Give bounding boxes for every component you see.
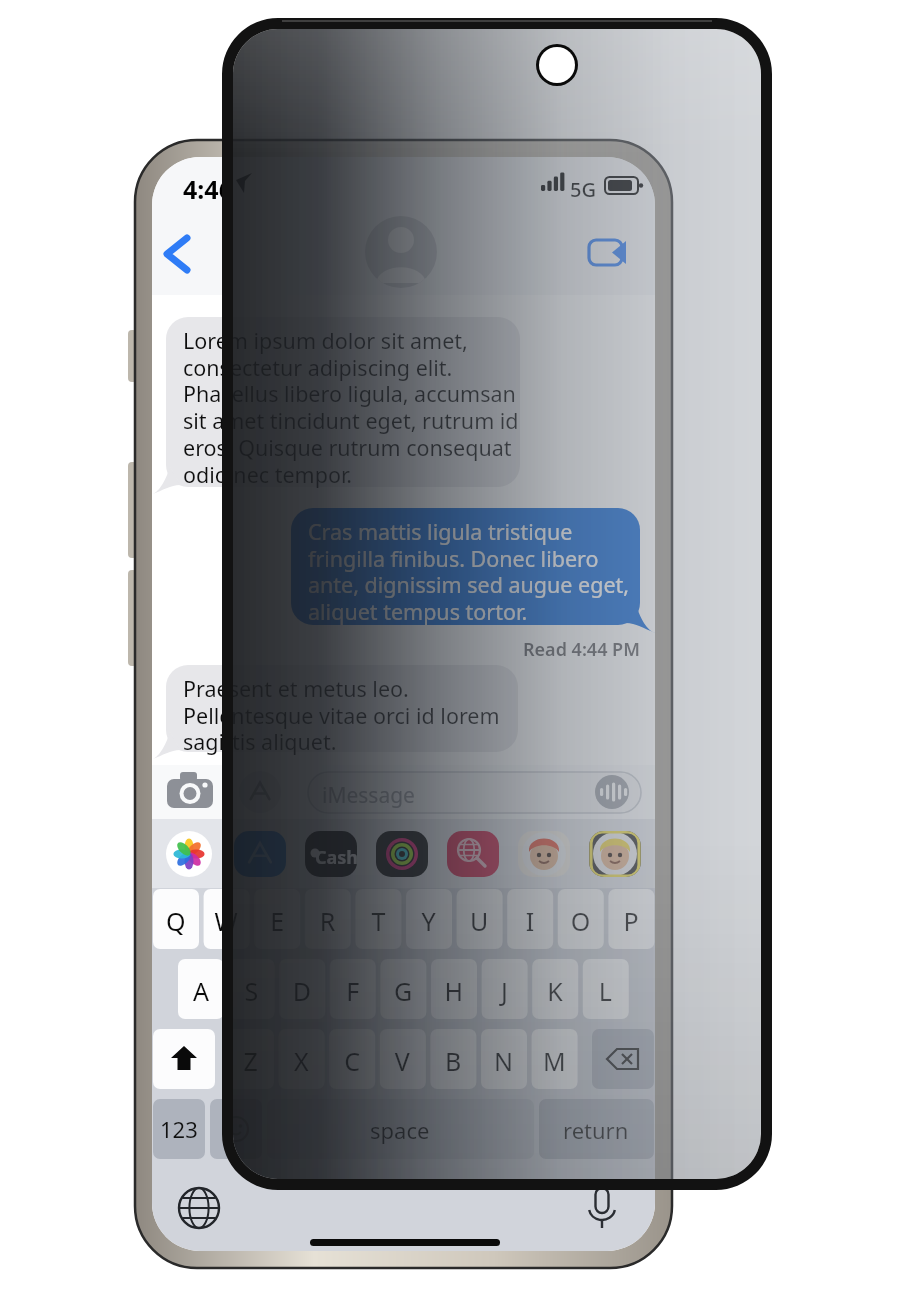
button[interactable]: Privacy screen protector over iPhone mes… (0, 0, 910, 1300)
